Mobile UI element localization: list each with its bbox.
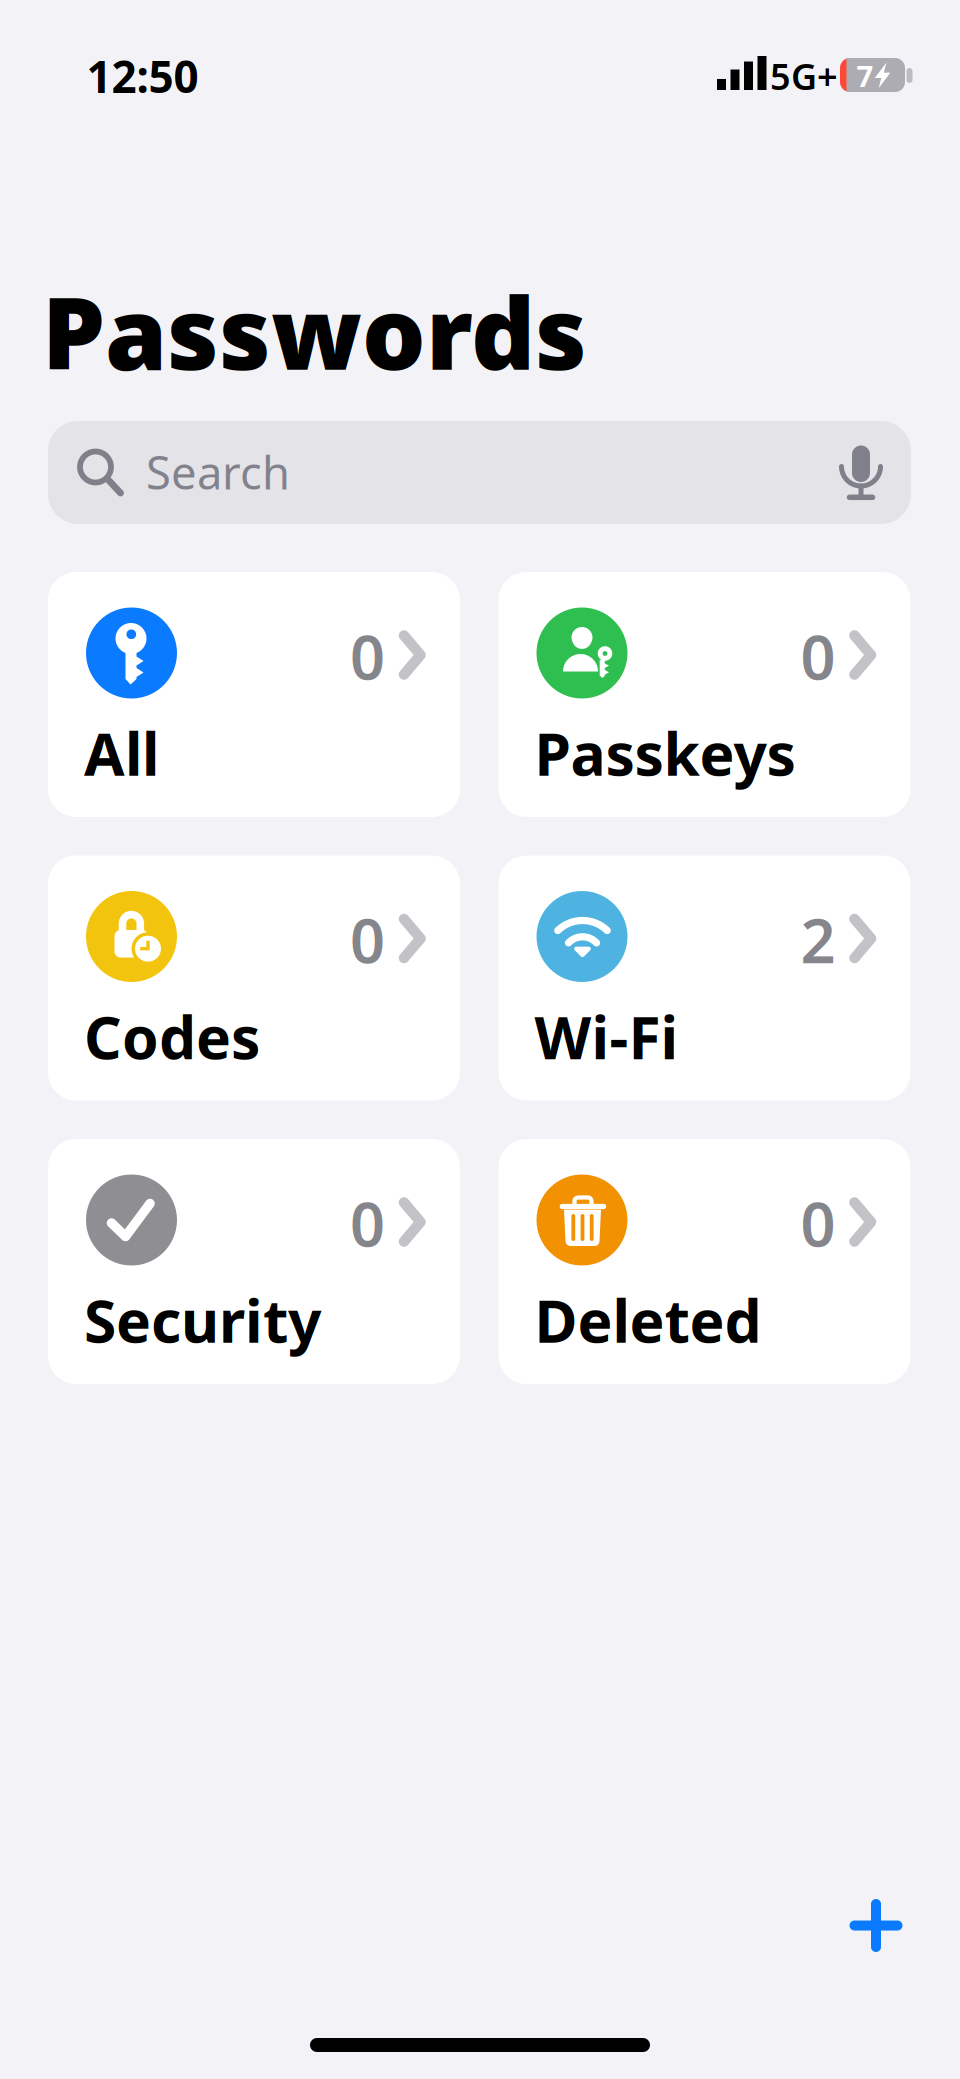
button[interactable]: 2: [498, 855, 910, 1100]
staticText: Passwords: [42, 265, 587, 397]
button[interactable]: Add: [849, 1898, 903, 1952]
button[interactable]: Search: [48, 421, 911, 524]
button[interactable]: 0: [498, 1139, 910, 1384]
button[interactable]: 0: [48, 855, 460, 1100]
staticText: Security: [84, 1281, 321, 1359]
staticText: Wi-Fi: [534, 997, 678, 1075]
staticText: Codes: [84, 997, 260, 1075]
staticText: 7: [856, 56, 873, 95]
staticText: Search: [146, 442, 290, 502]
staticText: 12:50: [86, 47, 198, 105]
staticText: 0: [350, 899, 385, 980]
staticText: All: [84, 714, 159, 792]
staticText: 5G+: [770, 52, 838, 100]
staticText: 0: [800, 615, 835, 697]
staticText: Passkeys: [534, 714, 795, 792]
button[interactable]: 0: [498, 572, 910, 817]
staticText: Deleted: [534, 1281, 761, 1359]
staticText: 0: [800, 1182, 835, 1264]
staticText: 2: [800, 899, 835, 980]
staticText: 0: [350, 1182, 385, 1264]
button[interactable]: 0: [48, 572, 460, 817]
button[interactable]: 0: [48, 1139, 460, 1384]
staticText: 0: [350, 615, 385, 697]
